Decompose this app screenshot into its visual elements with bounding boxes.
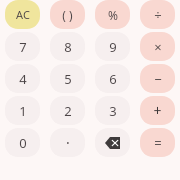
staticText: 1 — [19, 102, 27, 120]
staticText: = — [154, 134, 162, 152]
button[interactable]: 4 — [5, 64, 40, 93]
staticText: AC — [16, 7, 30, 22]
button[interactable]: 7 — [5, 32, 40, 61]
staticText: 6 — [109, 70, 117, 88]
button[interactable]: = — [140, 128, 175, 157]
button[interactable]: 0 — [5, 128, 40, 157]
button[interactable]: 2 — [50, 96, 85, 125]
staticText: 0 — [19, 134, 27, 152]
staticText: 4 — [19, 70, 27, 88]
staticText: 5 — [64, 70, 72, 88]
button[interactable]: · — [50, 128, 85, 157]
button[interactable]: × — [140, 32, 175, 61]
button[interactable]: 9 — [95, 32, 130, 61]
button[interactable]: % — [95, 0, 130, 29]
button[interactable]: AC — [5, 0, 40, 29]
staticText: 2 — [64, 102, 72, 120]
button[interactable]: 3 — [95, 96, 130, 125]
button[interactable]: Backspace — [95, 128, 130, 157]
staticText: % — [108, 7, 118, 23]
staticText: + — [153, 101, 162, 120]
staticText: 3 — [109, 102, 117, 120]
button[interactable]: 5 — [50, 64, 85, 93]
staticText: 7 — [19, 38, 27, 56]
button[interactable]: 1 — [5, 96, 40, 125]
button[interactable]: ÷ — [140, 0, 175, 29]
staticText: × — [154, 38, 162, 56]
staticText: · — [66, 133, 70, 152]
staticText: ( ) — [62, 7, 73, 23]
button[interactable]: + — [140, 96, 175, 125]
button[interactable]: 8 — [50, 32, 85, 61]
button[interactable]: 6 — [95, 64, 130, 93]
staticText: 9 — [109, 38, 117, 56]
button[interactable]: ( ) — [50, 0, 85, 29]
staticText: ÷ — [154, 6, 162, 24]
staticText: 8 — [64, 38, 72, 56]
button[interactable]: − — [140, 64, 175, 93]
staticText: − — [154, 70, 162, 88]
